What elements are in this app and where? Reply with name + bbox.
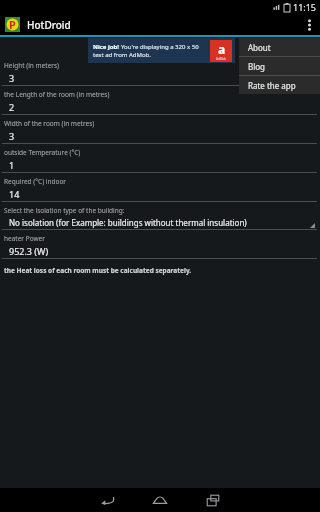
staticText: the Length of the room (in metres) bbox=[4, 90, 110, 99]
button[interactable]: Back bbox=[85, 488, 129, 512]
staticText: Rate the app bbox=[248, 80, 296, 91]
button[interactable]: 1 bbox=[0, 159, 320, 173]
staticText: AdMob bbox=[216, 57, 227, 61]
staticText: the Heat loss of each room must be calcu… bbox=[4, 266, 192, 275]
staticText: a bbox=[218, 41, 226, 57]
staticText: Nice job! bbox=[93, 43, 121, 51]
staticText: About bbox=[248, 42, 271, 53]
staticText: Select the isolation type of the buildin… bbox=[4, 206, 125, 215]
button[interactable]: More options bbox=[298, 14, 320, 35]
staticText: 2 bbox=[9, 101, 15, 113]
button[interactable]: 2 bbox=[0, 101, 320, 115]
staticText: 3 bbox=[9, 72, 15, 84]
staticText: Required (°C) indoor bbox=[4, 177, 67, 186]
button[interactable]: 3 bbox=[0, 130, 320, 144]
staticText: No isolation (for Example: buildings wit… bbox=[9, 217, 247, 228]
staticText: 3 bbox=[9, 130, 15, 142]
staticText: heater Power bbox=[4, 234, 45, 243]
staticText: HotDroid bbox=[27, 18, 71, 32]
staticText: Width of the room (in metres) bbox=[4, 119, 95, 128]
button[interactable]: 14 bbox=[0, 188, 320, 202]
button[interactable]: Advertisement bbox=[88, 38, 235, 63]
button[interactable]: Rate the app bbox=[239, 76, 320, 94]
staticText: 11:15 bbox=[293, 1, 317, 13]
staticText: 14 bbox=[9, 188, 20, 200]
staticText: Blog bbox=[248, 61, 266, 72]
staticText: Height (in meters) bbox=[4, 61, 60, 70]
button[interactable]: Recent apps bbox=[191, 488, 235, 512]
staticText: 952.3 (W) bbox=[9, 245, 49, 257]
button[interactable]: Home bbox=[138, 488, 182, 512]
button[interactable]: 3 bbox=[0, 72, 320, 86]
button[interactable]: No isolation (for Example: buildings wit… bbox=[0, 217, 320, 230]
staticText: outside Temperature (°C) bbox=[4, 148, 81, 157]
staticText: 1 bbox=[9, 159, 15, 171]
button[interactable]: 952.3 (W) bbox=[0, 245, 320, 259]
button[interactable]: About bbox=[239, 38, 320, 56]
staticText: P bbox=[9, 17, 16, 32]
button[interactable]: Blog bbox=[239, 57, 320, 75]
staticText: You're displaying a 320 x 50 bbox=[121, 43, 199, 51]
staticText: test ad from AdMob. bbox=[93, 51, 151, 59]
